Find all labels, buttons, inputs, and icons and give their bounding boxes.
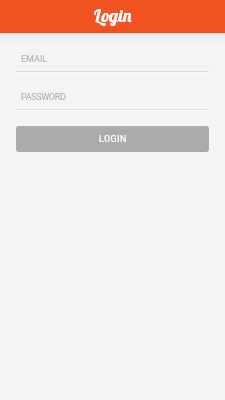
staticText: LOGIN bbox=[99, 134, 127, 145]
button[interactable]: EMAIL bbox=[16, 48, 209, 73]
button[interactable]: LOGIN bbox=[16, 126, 209, 152]
button[interactable]: PASSWORD bbox=[16, 86, 209, 111]
staticText: Login bbox=[93, 4, 133, 27]
staticText: PASSWORD bbox=[21, 92, 66, 103]
staticText: EMAIL bbox=[21, 54, 48, 65]
